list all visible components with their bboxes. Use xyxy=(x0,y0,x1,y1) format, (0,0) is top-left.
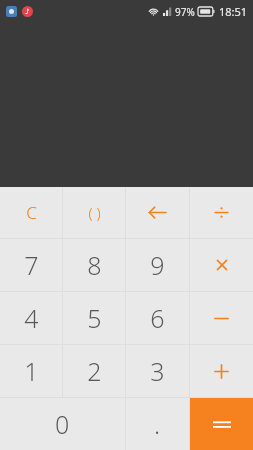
staticText: ♪ xyxy=(25,8,30,16)
staticText: 6 xyxy=(150,301,165,335)
staticText: 97% xyxy=(175,5,195,19)
staticText: 8 xyxy=(87,248,102,282)
staticText: 0 xyxy=(55,407,70,441)
button[interactable]: 4 xyxy=(0,292,62,344)
button[interactable]: 2 xyxy=(63,345,125,397)
staticText: 2 xyxy=(87,354,102,388)
staticText: 4 xyxy=(24,301,39,335)
button[interactable]: 9 xyxy=(126,239,189,291)
button[interactable]: Minus xyxy=(190,292,253,344)
button[interactable]: . xyxy=(126,398,189,450)
button[interactable]: 1 xyxy=(0,345,62,397)
staticText: 9 xyxy=(150,248,165,282)
button[interactable]: 6 xyxy=(126,292,189,344)
staticText: C xyxy=(26,201,37,224)
staticText: . xyxy=(154,407,161,441)
button[interactable]: Multiply xyxy=(190,239,253,291)
button[interactable]: Equals xyxy=(190,398,253,450)
staticText: 5 xyxy=(87,301,102,335)
button[interactable]: 3 xyxy=(126,345,189,397)
button[interactable]: ( ) xyxy=(63,187,125,238)
button[interactable]: 8 xyxy=(63,239,125,291)
staticText: 18:51 xyxy=(219,4,248,19)
staticText: 7 xyxy=(24,248,39,282)
button[interactable]: Backspace xyxy=(126,187,189,238)
button[interactable]: Divide xyxy=(190,187,253,238)
button[interactable]: 0 xyxy=(0,398,125,450)
button[interactable]: Plus xyxy=(190,345,253,397)
staticText: 1 xyxy=(24,354,39,388)
button[interactable]: C xyxy=(0,187,62,238)
staticText: 3 xyxy=(150,354,165,388)
staticText: ( ) xyxy=(88,203,101,223)
button[interactable]: 5 xyxy=(63,292,125,344)
button[interactable]: 7 xyxy=(0,239,62,291)
